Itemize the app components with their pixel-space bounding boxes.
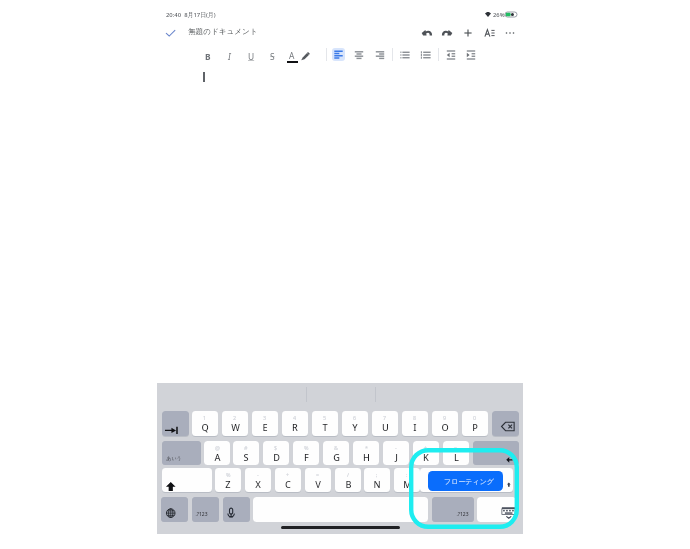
button[interactable]: Decrease indent	[443, 47, 459, 63]
button[interactable]: globe	[161, 497, 188, 522]
staticText: D	[273, 451, 280, 464]
button[interactable]: Highlight	[298, 49, 312, 63]
staticText: F	[304, 451, 309, 464]
staticText: E	[262, 421, 268, 434]
button[interactable]: dismiss	[477, 497, 516, 522]
button[interactable]: Numbered list	[418, 47, 434, 63]
staticText: /	[347, 471, 350, 478]
staticText: 1	[203, 414, 207, 421]
staticText: =	[316, 471, 320, 478]
button[interactable]: Undo	[419, 25, 435, 41]
button[interactable]: Y	[342, 411, 368, 436]
button[interactable]: Format	[482, 25, 498, 41]
button[interactable]: Strikethrough	[264, 48, 280, 64]
staticText: X	[255, 478, 261, 491]
button[interactable]: Z	[215, 468, 241, 492]
button[interactable]: D	[263, 441, 289, 465]
staticText: #	[244, 444, 248, 451]
button[interactable]: V	[305, 468, 331, 492]
button[interactable]: A	[204, 441, 230, 465]
button[interactable]: key	[253, 497, 428, 522]
staticText: I	[228, 51, 231, 62]
staticText: I	[413, 421, 417, 434]
button[interactable]: Underline	[243, 48, 259, 64]
staticText: A	[289, 50, 295, 61]
staticText: 5	[323, 414, 327, 421]
button[interactable]: H	[353, 441, 379, 465]
staticText: 7	[383, 414, 387, 421]
button[interactable]: U	[372, 411, 398, 436]
staticText: Q	[201, 421, 209, 434]
staticText: 4	[293, 414, 297, 421]
button[interactable]: tab	[162, 411, 189, 436]
staticText: U	[248, 51, 255, 62]
button[interactable]: enter	[473, 441, 519, 465]
staticText: L	[454, 451, 459, 464]
staticText: %	[304, 444, 309, 451]
staticText: K	[423, 451, 429, 464]
staticText: %	[226, 471, 231, 478]
staticText: +	[286, 471, 290, 478]
staticText: -	[395, 444, 397, 451]
staticText: J	[395, 451, 398, 464]
staticText: 20:40 8月17日(月)	[166, 11, 216, 19]
button[interactable]: あいう	[162, 441, 201, 465]
staticText: 9	[443, 414, 447, 421]
staticText: &	[334, 444, 338, 451]
button[interactable]: Q	[192, 411, 218, 436]
staticText: 3	[263, 414, 267, 421]
button[interactable]: Insert	[460, 25, 476, 41]
button[interactable]: P	[462, 411, 488, 436]
button[interactable]: More options	[502, 25, 518, 41]
staticText: W	[231, 421, 240, 434]
button[interactable]: .?123	[432, 497, 474, 522]
button[interactable]: .?123	[192, 497, 219, 522]
button[interactable]: K	[413, 441, 439, 465]
button[interactable]: X	[245, 468, 271, 492]
button[interactable]: I	[402, 411, 428, 436]
button[interactable]: Align left	[332, 48, 345, 61]
button[interactable]: bksp	[492, 411, 519, 436]
staticText: 8	[413, 414, 417, 421]
button[interactable]: C	[275, 468, 301, 492]
button[interactable]: O	[432, 411, 458, 436]
staticText: G	[333, 451, 340, 464]
staticText: 6	[353, 414, 357, 421]
button[interactable]: Redo	[439, 25, 455, 41]
staticText: ;	[376, 471, 378, 478]
button[interactable]: shiftr	[420, 468, 513, 492]
button[interactable]: W	[222, 411, 248, 436]
staticText: あいう	[166, 455, 182, 461]
staticText: 無題のドキュメント	[188, 27, 258, 37]
button[interactable]: L	[443, 441, 469, 465]
button[interactable]: mic	[223, 497, 250, 522]
button[interactable]: フローティング	[428, 471, 503, 491]
button[interactable]: J	[383, 441, 409, 465]
button[interactable]: Done	[161, 24, 181, 42]
button[interactable]: F	[293, 441, 319, 465]
button[interactable]: N	[364, 468, 390, 492]
staticText: *	[365, 444, 368, 451]
button[interactable]: S	[233, 441, 259, 465]
button[interactable]: Italic	[221, 48, 237, 64]
button[interactable]: M	[394, 468, 420, 492]
button[interactable]: Align centre	[351, 47, 367, 63]
button[interactable]: G	[323, 441, 349, 465]
button[interactable]: T	[312, 411, 338, 436]
button[interactable]: Align right	[372, 47, 388, 63]
staticText: 0	[473, 414, 477, 421]
button[interactable]: B	[335, 468, 361, 492]
staticText: 26%	[493, 11, 505, 19]
button[interactable]: Bold	[200, 48, 216, 64]
staticText: C	[285, 478, 291, 491]
button[interactable]: R	[282, 411, 308, 436]
staticText: フローティング	[444, 477, 494, 486]
staticText: +	[424, 444, 428, 451]
button[interactable]: Increase indent	[463, 47, 479, 63]
button[interactable]: shift	[162, 468, 212, 492]
button[interactable]: E	[252, 411, 278, 436]
staticText: O	[441, 421, 449, 434]
button[interactable]: Bulleted list	[397, 47, 413, 63]
staticText: P	[472, 421, 478, 434]
button[interactable]: Text colour	[284, 47, 300, 63]
